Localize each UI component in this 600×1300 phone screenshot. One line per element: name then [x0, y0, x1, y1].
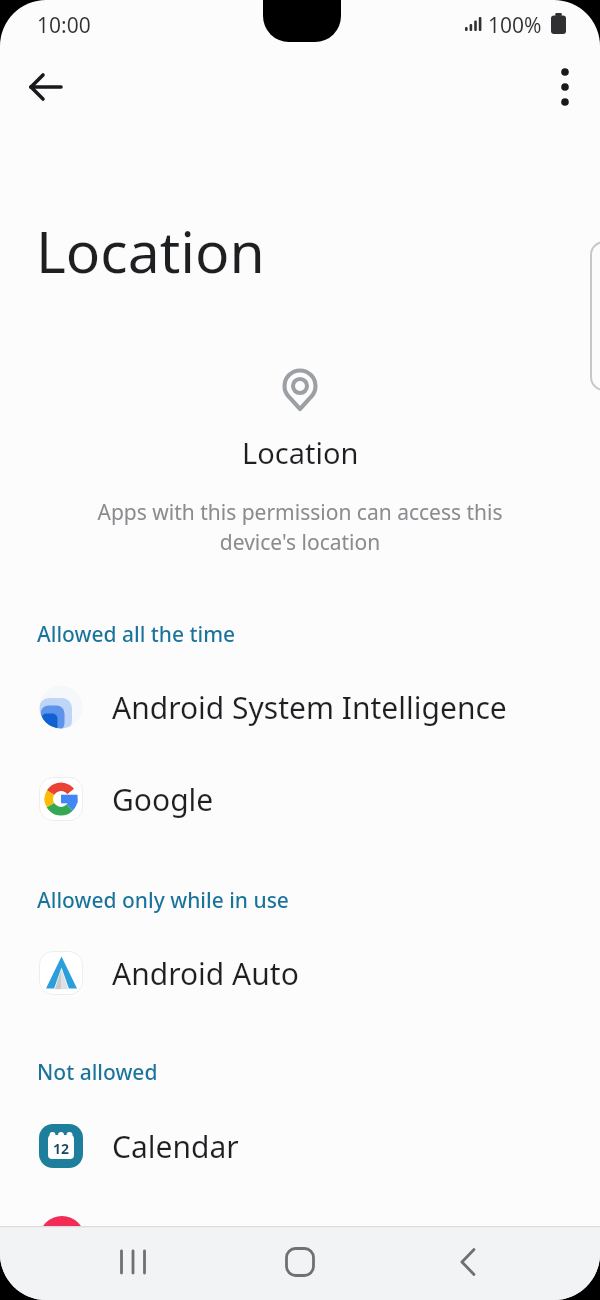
button[interactable] [276, 1238, 324, 1286]
staticText: Android Auto [112, 953, 299, 994]
staticText: 10:00 [37, 11, 91, 40]
button[interactable]: Android System Intelligence [0, 669, 600, 745]
staticText: 100% [488, 11, 542, 40]
staticText: Location [242, 433, 359, 472]
staticText: Location [36, 212, 265, 290]
staticText: Allowed only while in use [37, 886, 289, 915]
staticText: Calendar [112, 1126, 239, 1167]
staticText: Android System Intelligence [112, 687, 507, 728]
staticText: Apps with this permission can access thi… [97, 498, 503, 556]
staticText: Google [112, 779, 214, 820]
button[interactable]: Google [0, 761, 600, 837]
button[interactable]: 12 [0, 1108, 600, 1184]
staticText: Not allowed [37, 1058, 158, 1087]
button[interactable] [543, 63, 587, 111]
button[interactable] [21, 63, 69, 111]
staticText: 12 [53, 1139, 70, 1158]
button[interactable]: Android Auto [0, 935, 600, 1011]
button[interactable] [109, 1238, 157, 1286]
staticText: Allowed all the time [37, 620, 236, 649]
button[interactable] [445, 1238, 493, 1286]
